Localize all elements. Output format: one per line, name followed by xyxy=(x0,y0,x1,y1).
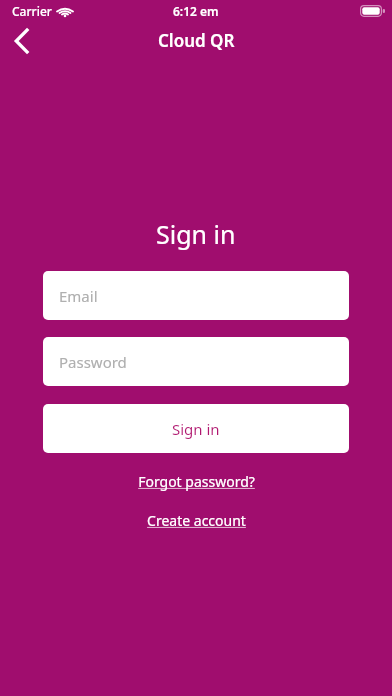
staticText: Carrier xyxy=(12,3,52,19)
button[interactable]: Back xyxy=(0,22,44,59)
button[interactable]: Password xyxy=(43,337,349,386)
staticText: 6:12 em xyxy=(173,3,219,19)
staticText: Sign in xyxy=(172,419,220,439)
staticText: Email xyxy=(59,286,98,306)
staticText: Create account xyxy=(147,511,246,530)
button[interactable]: Forgot password? xyxy=(128,469,265,494)
button[interactable]: Create account xyxy=(137,508,256,533)
staticText: Sign in xyxy=(156,217,236,251)
button[interactable]: Sign in xyxy=(43,404,349,453)
staticText: Forgot password? xyxy=(138,472,255,491)
staticText: Password xyxy=(59,352,127,372)
staticText: Cloud QR xyxy=(158,29,235,52)
button[interactable]: Email xyxy=(43,271,349,320)
